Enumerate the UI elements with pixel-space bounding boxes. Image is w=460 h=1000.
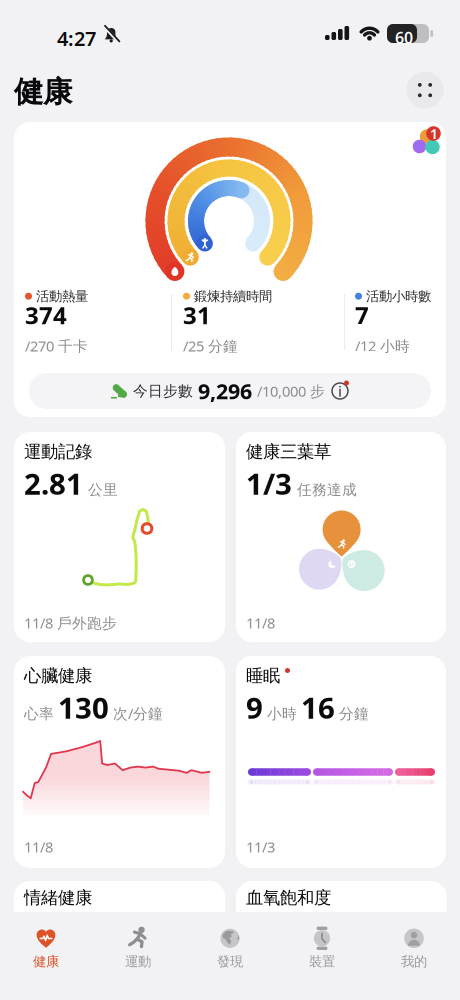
button[interactable]: 健康	[0, 922, 92, 974]
staticText: 鍛煉持續時間	[194, 288, 272, 304]
button[interactable]: 運動記錄	[14, 432, 225, 642]
staticText: 小時	[267, 705, 297, 723]
staticText: 活動熱量	[36, 288, 88, 304]
button[interactable]: 健康三葉草通知	[410, 124, 446, 160]
staticText: 公里	[88, 481, 118, 499]
button[interactable]: 裝置	[276, 922, 368, 974]
staticText: 裝置	[309, 953, 335, 970]
staticText: /12 小時	[355, 336, 410, 355]
staticText: 374	[25, 299, 67, 331]
staticText: /270 千卡	[25, 336, 88, 355]
staticText: 9,296	[198, 377, 252, 405]
staticText: 運動	[125, 953, 151, 970]
button[interactable]: 1	[14, 122, 446, 417]
staticText: 分鐘	[339, 705, 369, 723]
staticText: 情緒健康	[24, 887, 92, 908]
staticText: 11/8	[246, 613, 275, 632]
staticText: 發現	[217, 953, 243, 970]
button[interactable]: 更多	[406, 71, 443, 108]
staticText: 9	[246, 688, 263, 727]
staticText: 次/分鐘	[113, 703, 163, 723]
button[interactable]: 發現	[184, 922, 276, 974]
staticText: 活動小時數	[366, 288, 431, 304]
staticText: 血氧飽和度	[246, 887, 331, 908]
staticText: 11/3	[246, 837, 275, 856]
staticText: 16	[301, 688, 335, 727]
staticText: 心率	[24, 705, 54, 723]
staticText: 11/8	[24, 837, 53, 856]
button[interactable]: 睡眠	[236, 656, 446, 868]
staticText: 健康	[14, 74, 72, 110]
button[interactable]: 情緒健康	[14, 881, 225, 971]
staticText: 健康三葉草	[246, 441, 331, 462]
staticText: 1/3	[246, 464, 292, 503]
staticText: 健康	[33, 953, 59, 970]
button[interactable]: 今日步數	[29, 373, 431, 409]
staticText: 31	[183, 299, 211, 331]
staticText: 1	[430, 124, 438, 143]
staticText: /25 分鐘	[183, 336, 238, 355]
button[interactable]: 健康三葉草	[236, 432, 446, 642]
staticText: 2.81	[24, 464, 83, 503]
staticText: 今日步數	[133, 382, 193, 400]
staticText: /10,000 步	[257, 381, 325, 401]
staticText: 130	[58, 688, 109, 727]
staticText: 7	[355, 299, 369, 331]
staticText: 運動記錄	[24, 441, 92, 462]
staticText: 任務達成	[297, 481, 357, 499]
staticText: 心臟健康	[24, 665, 92, 686]
button[interactable]: 血氧飽和度	[236, 881, 447, 971]
button[interactable]: 運動	[92, 922, 184, 974]
staticText: 我的	[401, 953, 427, 970]
staticText: 11/8 戶外跑步	[24, 613, 117, 632]
button[interactable]: 我的	[368, 922, 460, 974]
staticText: i	[338, 381, 342, 401]
staticText: 睡眠	[246, 665, 280, 686]
staticText: 4:27	[57, 25, 96, 52]
staticText: 60	[395, 27, 413, 48]
button[interactable]: 心臟健康	[14, 656, 225, 868]
